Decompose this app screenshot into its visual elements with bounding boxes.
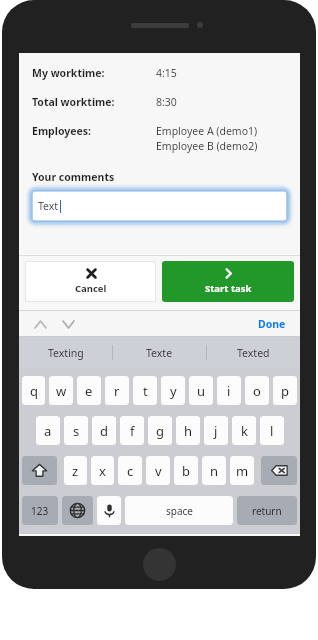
button[interactable]: return: [237, 496, 297, 525]
button[interactable]: p: [273, 376, 297, 405]
staticText: a: [44, 422, 52, 440]
staticText: Texte: [146, 346, 173, 360]
button[interactable]: h: [176, 416, 200, 445]
staticText: k: [241, 422, 248, 440]
button[interactable]: Texting: [19, 337, 112, 368]
button[interactable]: Cancel: [25, 261, 156, 302]
staticText: y: [170, 382, 177, 400]
staticText: r: [114, 382, 120, 400]
button[interactable]: s: [64, 416, 88, 445]
staticText: return: [252, 504, 282, 518]
button[interactable]: b: [174, 456, 198, 485]
button[interactable]: j: [204, 416, 228, 445]
staticText: t: [143, 382, 148, 400]
button[interactable]: z: [64, 456, 87, 485]
button[interactable]: Start task: [162, 261, 294, 302]
button[interactable]: d: [92, 416, 116, 445]
button[interactable]: w: [49, 376, 73, 405]
staticText: g: [156, 422, 164, 440]
button[interactable]: l: [260, 416, 284, 445]
staticText: u: [197, 382, 206, 400]
staticText: c: [127, 462, 134, 480]
staticText: p: [281, 382, 289, 400]
staticText: x: [99, 462, 106, 480]
staticText: Employees:: [32, 124, 91, 138]
button[interactable]: c: [118, 456, 142, 485]
button[interactable]: q: [22, 376, 45, 405]
button[interactable]: u: [189, 376, 213, 405]
button[interactable]: space: [125, 496, 233, 525]
button[interactable]: Done: [254, 313, 290, 335]
button[interactable]: o: [245, 376, 269, 405]
button[interactable]: Texted: [207, 337, 300, 368]
staticText: Employee A (demo1): [156, 124, 258, 138]
button[interactable]: Dictation: [97, 496, 121, 525]
button[interactable]: i: [217, 376, 241, 405]
staticText: Cancel: [75, 282, 107, 295]
button[interactable]: t: [133, 376, 157, 405]
button[interactable]: e: [77, 376, 101, 405]
staticText: 4:15: [156, 66, 177, 80]
staticText: Text: [38, 199, 59, 213]
staticText: q: [30, 382, 38, 400]
staticText: Total worktime:: [32, 95, 115, 109]
staticText: space: [166, 504, 193, 518]
staticText: d: [100, 422, 108, 440]
button[interactable]: m: [230, 456, 254, 485]
button[interactable]: Shift: [22, 456, 57, 485]
staticText: m: [236, 462, 249, 480]
button[interactable]: Change keyboard: [62, 496, 93, 525]
button[interactable]: r: [105, 376, 129, 405]
button[interactable]: a: [36, 416, 60, 445]
staticText: My worktime:: [32, 66, 105, 80]
staticText: f: [130, 422, 135, 440]
staticText: Start task: [205, 282, 252, 295]
staticText: b: [182, 462, 190, 480]
button[interactable]: y: [161, 376, 185, 405]
staticText: v: [155, 462, 162, 480]
button[interactable]: g: [148, 416, 172, 445]
staticText: h: [184, 422, 193, 440]
button[interactable]: Next field: [57, 313, 79, 335]
staticText: Employee B (demo2): [156, 139, 258, 153]
staticText: z: [72, 462, 79, 480]
button[interactable]: k: [232, 416, 256, 445]
button[interactable]: n: [202, 456, 226, 485]
staticText: Done: [258, 317, 286, 331]
staticText: o: [253, 382, 261, 400]
staticText: i: [227, 382, 231, 400]
button[interactable]: f: [120, 416, 144, 445]
button[interactable]: v: [146, 456, 170, 485]
staticText: e: [85, 382, 93, 400]
staticText: 123: [31, 504, 49, 518]
staticText: s: [73, 422, 80, 440]
button[interactable]: Text: [32, 191, 287, 221]
staticText: n: [210, 462, 219, 480]
staticText: Texted: [237, 346, 270, 360]
button[interactable]: 123: [22, 496, 58, 525]
staticText: Texting: [48, 346, 84, 360]
button[interactable]: Texte: [113, 337, 206, 368]
button[interactable]: x: [91, 456, 114, 485]
staticText: 8:30: [156, 95, 177, 109]
staticText: l: [270, 422, 274, 440]
staticText: Your comments: [32, 170, 115, 184]
button[interactable]: Delete: [261, 456, 297, 485]
button[interactable]: Previous field: [29, 313, 51, 335]
staticText: j: [214, 422, 218, 440]
staticText: w: [56, 382, 67, 400]
